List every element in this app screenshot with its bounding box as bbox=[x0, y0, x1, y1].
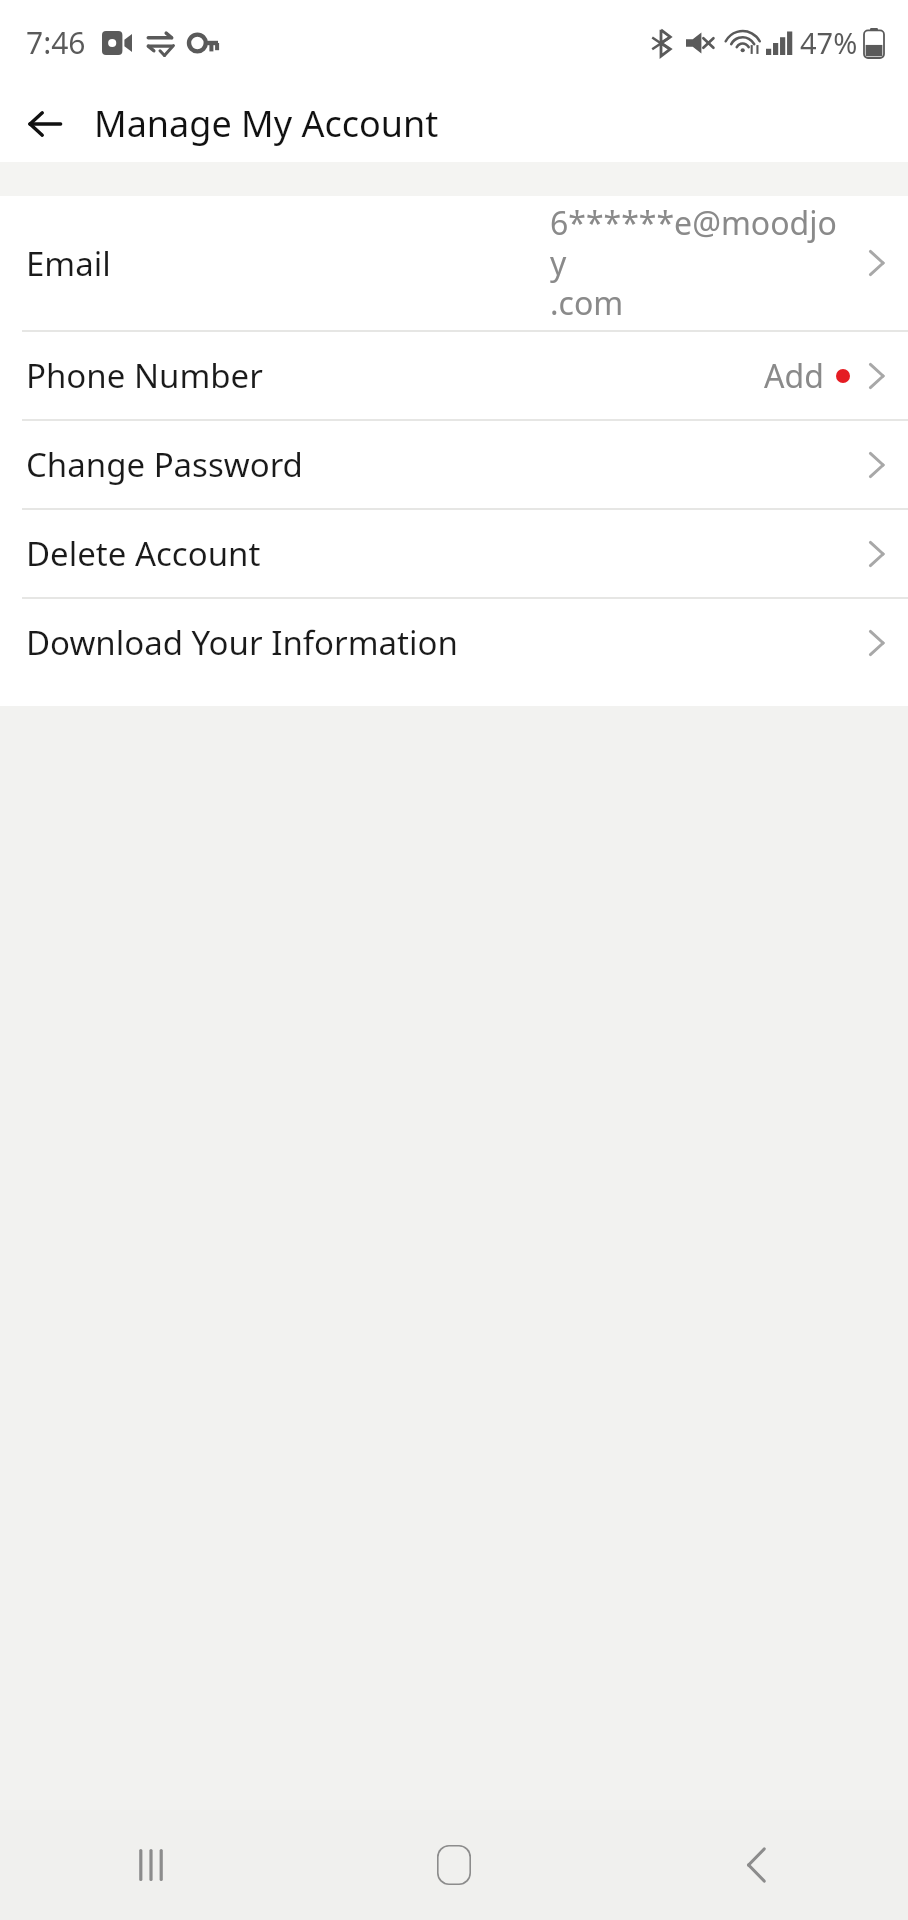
button[interactable]: Home bbox=[302, 1810, 605, 1920]
staticText: 7:46 bbox=[26, 22, 86, 63]
button[interactable]: Email bbox=[0, 196, 908, 330]
button[interactable]: Recent apps bbox=[0, 1810, 302, 1920]
staticText: 6******e@moodjoy .com bbox=[550, 201, 850, 325]
staticText: Change Password bbox=[26, 442, 303, 487]
staticText: Manage My Account bbox=[94, 99, 439, 148]
staticText: 47% bbox=[800, 23, 858, 62]
button[interactable]: Delete Account bbox=[0, 510, 908, 597]
button[interactable]: Back bbox=[14, 93, 76, 155]
staticText: Email bbox=[26, 241, 111, 286]
button[interactable]: Phone Number bbox=[0, 332, 908, 419]
button[interactable]: Change Password bbox=[0, 421, 908, 508]
button[interactable]: Back bbox=[605, 1810, 908, 1920]
staticText: Delete Account bbox=[26, 531, 261, 576]
staticText: Phone Number bbox=[26, 353, 263, 398]
button[interactable]: Download Your Information bbox=[0, 599, 908, 686]
staticText: Add bbox=[764, 354, 824, 398]
staticText: Download Your Information bbox=[26, 620, 458, 665]
